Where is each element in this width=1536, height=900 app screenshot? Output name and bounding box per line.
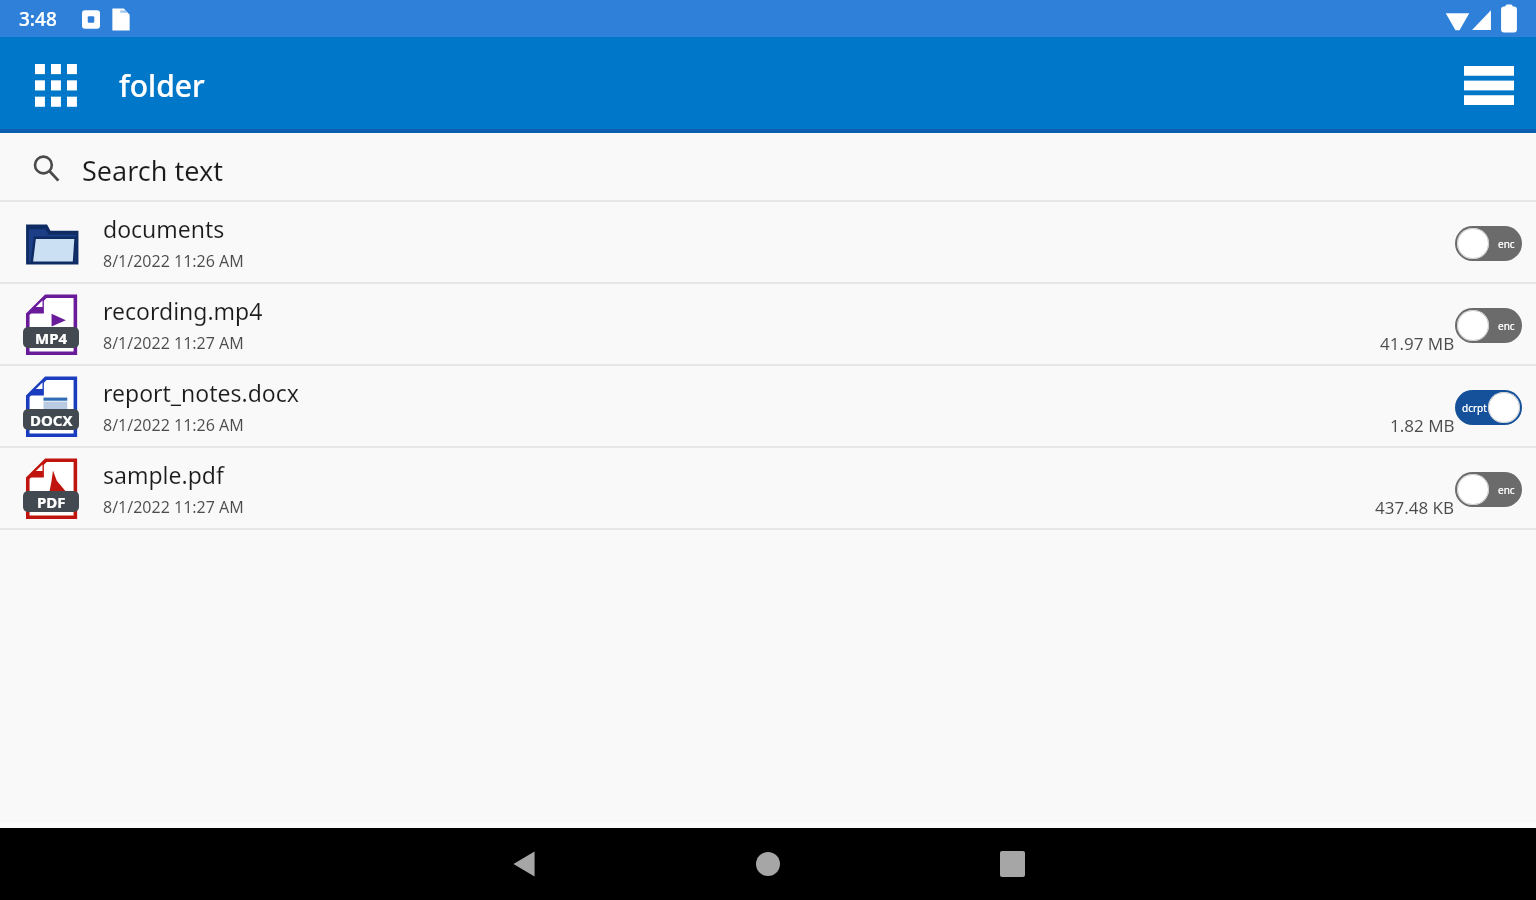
button[interactable]: Encrypt, off	[1455, 308, 1522, 343]
staticText: dcrpt	[1462, 401, 1487, 415]
staticText: report_notes.docx	[103, 377, 299, 408]
button[interactable]: MP4	[0, 284, 1536, 366]
staticText: 8/1/2022 11:27 AM	[103, 496, 244, 518]
staticText: folder	[119, 65, 205, 106]
button[interactable]: Encrypt, off	[1455, 226, 1522, 261]
button[interactable]: Decrypt, on	[1455, 390, 1522, 425]
staticText: recording.mp4	[103, 295, 263, 326]
staticText: enc	[1498, 319, 1515, 333]
staticText: sample.pdf	[103, 459, 224, 490]
button[interactable]: Encrypt, off	[1455, 472, 1522, 507]
button[interactable]: Menu	[1454, 50, 1524, 120]
staticText: 41.97 MB	[1380, 332, 1455, 355]
staticText: 8/1/2022 11:26 AM	[103, 414, 244, 436]
staticText: 8/1/2022 11:27 AM	[103, 332, 244, 354]
button[interactable]: documents	[0, 202, 1536, 284]
button[interactable]: Search text	[0, 133, 1536, 202]
button[interactable]: Home	[732, 828, 804, 900]
staticText: documents	[103, 213, 225, 244]
staticText: PDF	[37, 492, 66, 512]
button[interactable]: Back	[488, 828, 560, 900]
staticText: DOCX	[30, 410, 73, 430]
staticText: 8/1/2022 11:26 AM	[103, 250, 244, 272]
staticText: Search text	[82, 152, 223, 189]
staticText: enc	[1498, 237, 1515, 251]
staticText: 1.82 MB	[1390, 414, 1455, 437]
staticText: MP4	[35, 328, 68, 348]
staticText: enc	[1498, 483, 1515, 497]
button[interactable]: DOCX	[0, 366, 1536, 448]
staticText: 3:48	[19, 6, 57, 32]
staticText: 437.48 KB	[1375, 496, 1455, 519]
button[interactable]: Apps	[21, 49, 93, 121]
button[interactable]: Recents	[976, 828, 1048, 900]
button[interactable]: PDF	[0, 448, 1536, 530]
